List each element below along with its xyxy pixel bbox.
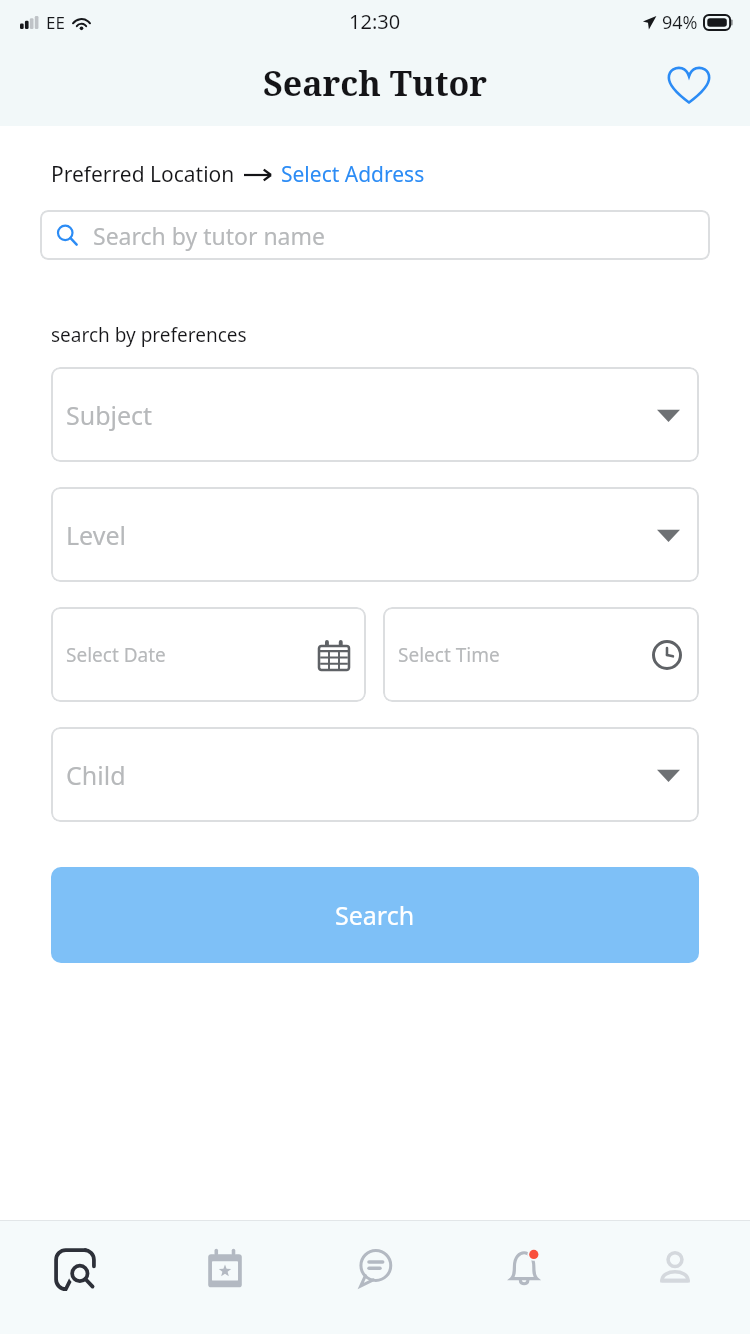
staticText: Level (66, 518, 126, 552)
staticText: Search Tutor (263, 60, 488, 106)
button[interactable]: Child (51, 727, 699, 822)
staticText: Subject (66, 398, 153, 432)
button[interactable]: Search (51, 867, 699, 963)
staticText: Select Time (398, 642, 500, 668)
button[interactable]: Notifications (450, 1221, 600, 1334)
button[interactable]: Select Time (383, 607, 699, 702)
staticText: Select Date (66, 642, 166, 668)
other: Select date (317, 638, 351, 672)
staticText: Search (335, 898, 415, 932)
staticText: search by preferences (51, 322, 247, 348)
button[interactable]: Search by tutor name (40, 210, 710, 260)
button[interactable]: Bookings (150, 1221, 300, 1334)
staticText: Select Address (281, 160, 425, 189)
staticText: 12:30 (349, 8, 401, 35)
button[interactable]: Search tutors (0, 1221, 150, 1334)
staticText: EE (46, 11, 65, 34)
button[interactable]: Level (51, 487, 699, 582)
button[interactable]: Select Date (51, 607, 366, 702)
button[interactable]: Select Address (281, 160, 425, 189)
button[interactable]: Subject (51, 367, 699, 462)
button[interactable]: Favourites (665, 61, 713, 109)
staticText: Child (66, 758, 126, 792)
other: Select time (650, 638, 684, 672)
button[interactable]: Profile (600, 1221, 750, 1334)
button[interactable]: Messages (300, 1221, 450, 1334)
staticText: 94% (662, 10, 698, 35)
staticText: Search by tutor name (93, 220, 325, 251)
staticText: Preferred Location (51, 160, 235, 189)
